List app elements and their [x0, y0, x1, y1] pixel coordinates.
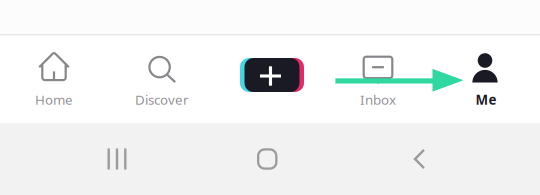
- button[interactable]: Home: [257, 148, 277, 170]
- button[interactable]: Home: [0, 35, 108, 123]
- button[interactable]: Back: [414, 149, 425, 169]
- staticText: Discover: [135, 91, 189, 108]
- staticText: Home: [35, 91, 73, 108]
- button[interactable]: Recent apps: [107, 148, 126, 169]
- button[interactable]: Me: [432, 35, 540, 123]
- button[interactable]: Inbox: [324, 35, 432, 123]
- staticText: Me: [475, 91, 496, 108]
- button[interactable]: Discover: [108, 35, 216, 123]
- staticText: Inbox: [360, 91, 396, 108]
- button[interactable]: Create: [216, 35, 324, 123]
